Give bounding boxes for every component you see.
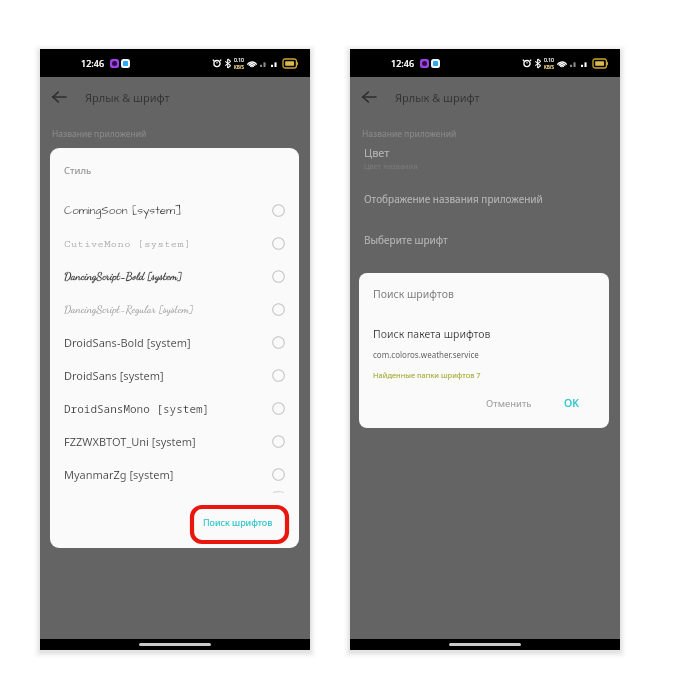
button[interactable]: OK	[558, 392, 585, 414]
staticText: Поиск шрифтов	[373, 287, 454, 301]
button[interactable]: Отменить	[480, 393, 538, 414]
button[interactable]: Back	[354, 82, 384, 112]
staticText: Ярлык & шрифт	[85, 90, 170, 105]
staticText: Поиск шрифтов	[203, 516, 273, 528]
button[interactable]: Цвет	[350, 144, 620, 173]
button[interactable]: DancingScript-Bold [system]	[50, 260, 299, 293]
staticText: Найденные папки шрифтов 7	[373, 370, 481, 380]
staticText: DancingScript-Bold [system]	[64, 270, 182, 283]
button[interactable]: DancingScript-Regular [system]	[50, 293, 299, 326]
staticText: DroidSans [system]	[64, 368, 164, 383]
staticText: Ярлык & шрифт	[395, 90, 480, 105]
staticText: com.coloros.weather.service	[373, 349, 479, 360]
button[interactable]: MyanmarZg [system]	[50, 458, 299, 491]
staticText: FZZWXBTOT_Uni [system]	[64, 434, 196, 449]
staticText: 0.10	[234, 57, 244, 64]
button[interactable]: Home	[40, 639, 310, 650]
button[interactable]: ComingSoon [system]	[50, 194, 299, 227]
button[interactable]: Отображение названия приложений	[350, 191, 620, 207]
staticText: MyanmarZg [system]	[64, 467, 174, 482]
staticText: OK	[564, 396, 579, 410]
staticText: Отображение названия приложений	[364, 192, 543, 206]
staticText: Цвет	[364, 145, 390, 160]
staticText: 0.10	[544, 57, 554, 64]
staticText: Название приложений	[52, 128, 147, 140]
staticText: Выберите шрифт	[364, 233, 448, 247]
staticText: DroidSansMono [system]	[64, 401, 210, 416]
staticText: CutiveMono [system]	[64, 238, 191, 250]
staticText: KB/S	[544, 64, 554, 70]
button[interactable]: CutiveMono [system]	[50, 227, 299, 260]
button[interactable]: FZZWXBTOT_Uni [system]	[50, 425, 299, 458]
staticText: 12:46	[391, 57, 415, 69]
staticText: KB/S	[234, 64, 244, 70]
staticText: Отменить	[486, 397, 532, 410]
button[interactable]: Back	[44, 82, 74, 112]
button[interactable]: Home	[350, 639, 620, 650]
button[interactable]: Поиск шрифтов	[193, 509, 283, 535]
staticText: Название приложений	[362, 128, 457, 140]
button[interactable]: DroidSansMono [system]	[50, 392, 299, 425]
button[interactable]: Выберите шрифт	[350, 232, 620, 248]
staticText: 12:46	[81, 57, 105, 69]
button[interactable]: DroidSans-Bold [system]	[50, 326, 299, 359]
staticText: DroidSans-Bold [system]	[64, 335, 191, 350]
staticText: DancingScript-Regular [system]	[64, 303, 194, 316]
button[interactable]: DroidSans [system]	[50, 359, 299, 392]
staticText: Стиль	[64, 164, 92, 177]
staticText: Цвет названия	[364, 161, 418, 171]
staticText: Поиск пакета шрифтов	[373, 327, 491, 341]
staticText: ComingSoon [system]	[64, 203, 182, 219]
